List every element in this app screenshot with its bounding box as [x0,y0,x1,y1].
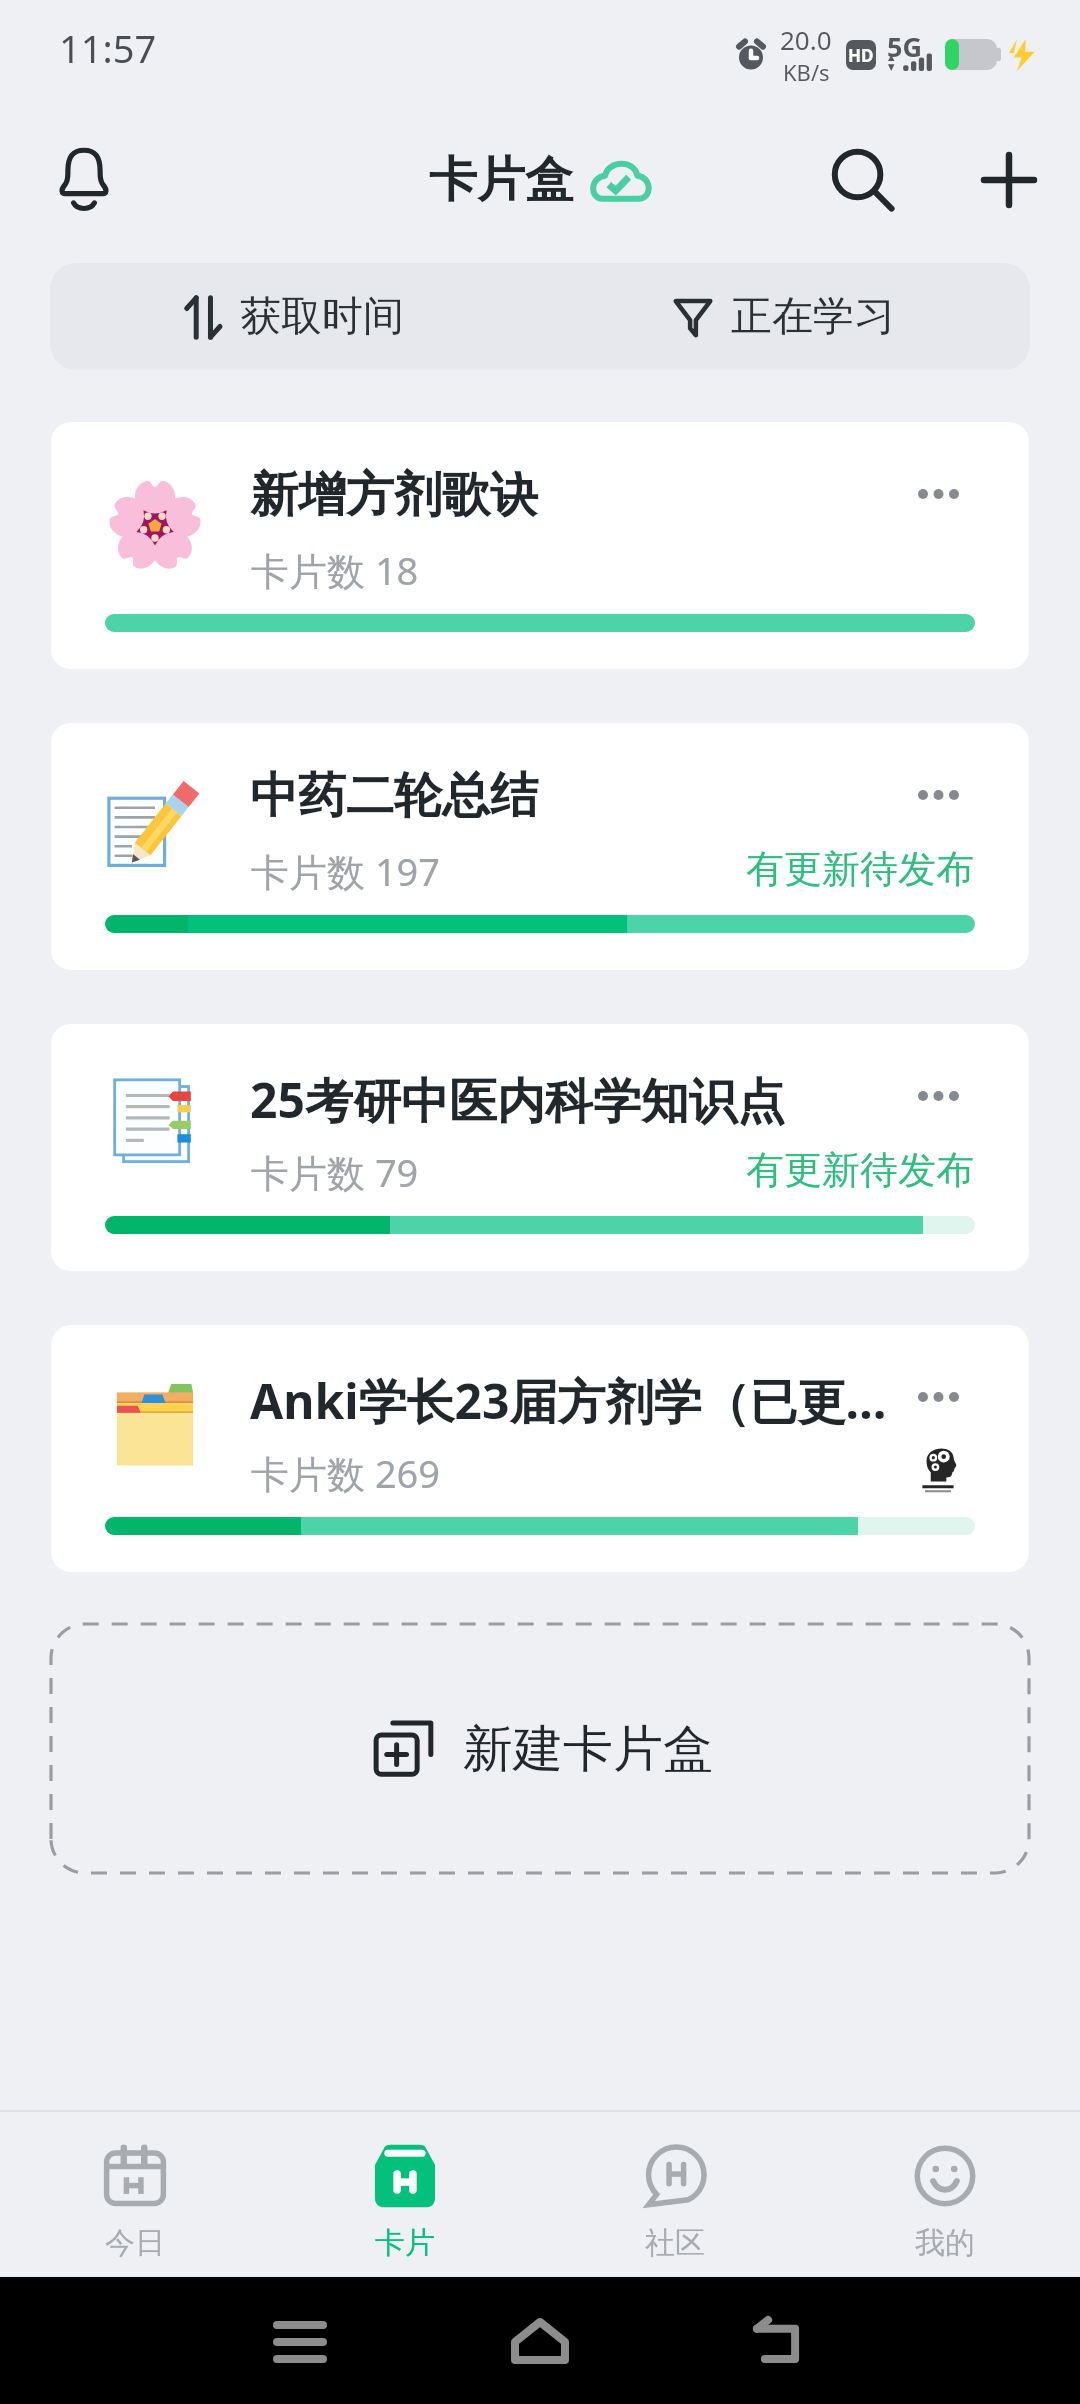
staticText: 5G [887,28,922,62]
staticText: 有更新待发布 [746,845,974,893]
staticText: 卡片 [375,2224,435,2262]
button[interactable]: 25考研中医内科学知识点 [51,1024,1029,1271]
button[interactable]: 我的 [810,2112,1080,2277]
button[interactable]: Search [815,132,911,228]
button[interactable]: 中药二轮总结 [51,723,1029,970]
button[interactable]: 社区 [540,2112,810,2277]
staticText: 卡片数 269 [251,1447,441,1499]
button[interactable]: More options [883,747,993,843]
button[interactable]: Notifications [40,136,128,224]
staticText: 卡片数 79 [251,1146,419,1198]
button[interactable]: 卡片 [270,2112,540,2277]
staticText: HD [848,44,874,67]
button[interactable]: Back [735,2296,825,2386]
staticText: 卡片数 18 [251,544,419,596]
staticText: 正在学习 [731,291,895,343]
staticText: 11:57 [59,22,157,74]
button[interactable]: Add [961,132,1057,228]
staticText: 25考研中医内科学知识点 [250,1067,785,1133]
staticText: 卡片数 197 [251,845,441,897]
button[interactable]: 新增方剂歌诀 [51,422,1029,669]
button[interactable]: More options [883,1048,993,1144]
staticText: 今日 [105,2224,165,2262]
staticText: Anki学长23届方剂学（已更… [250,1368,887,1434]
button[interactable]: More options [883,1349,993,1445]
staticText: 中药二轮总结 [250,766,538,826]
button[interactable]: More options [883,446,993,542]
staticText: 20.0 [780,22,832,57]
button[interactable]: 今日 [0,2112,270,2277]
button[interactable]: 获取时间 [50,263,540,370]
staticText: 卡片盒 [429,150,573,210]
staticText: KB/s [783,57,830,87]
button[interactable]: Home [495,2296,585,2386]
staticText: 新增方剂歌诀 [250,465,538,525]
button[interactable]: 正在学习 [540,263,1030,370]
staticText: 获取时间 [240,291,404,343]
staticText: 社区 [645,2224,705,2262]
button[interactable]: Recents [255,2296,345,2386]
staticText: 新建卡片盒 [463,1718,713,1781]
staticText: 有更新待发布 [746,1146,974,1194]
button[interactable]: 新建卡片盒 [49,1622,1031,1875]
button[interactable]: Anki学长23届方剂学（已更… [51,1325,1029,1572]
staticText: 我的 [915,2224,975,2262]
